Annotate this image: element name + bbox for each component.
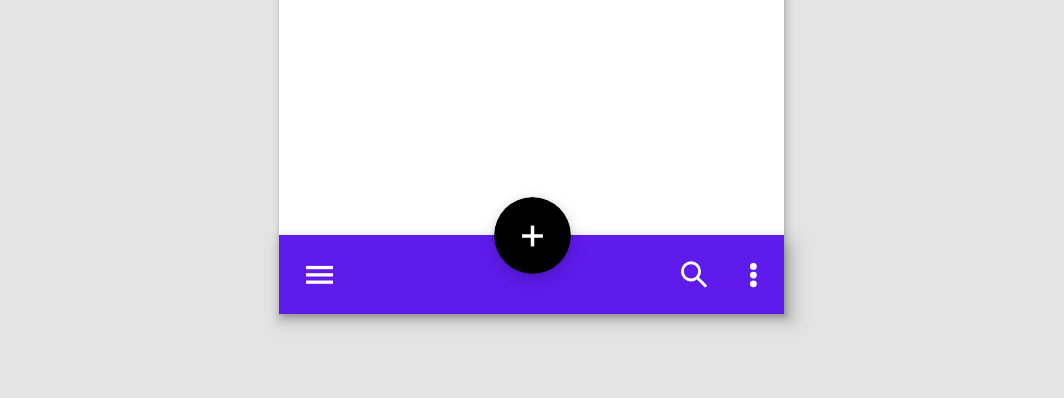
button[interactable]: Add [494, 197, 571, 274]
button[interactable]: More options [729, 250, 777, 298]
button[interactable]: Search [670, 250, 718, 298]
button[interactable]: Navigation menu [295, 251, 343, 299]
